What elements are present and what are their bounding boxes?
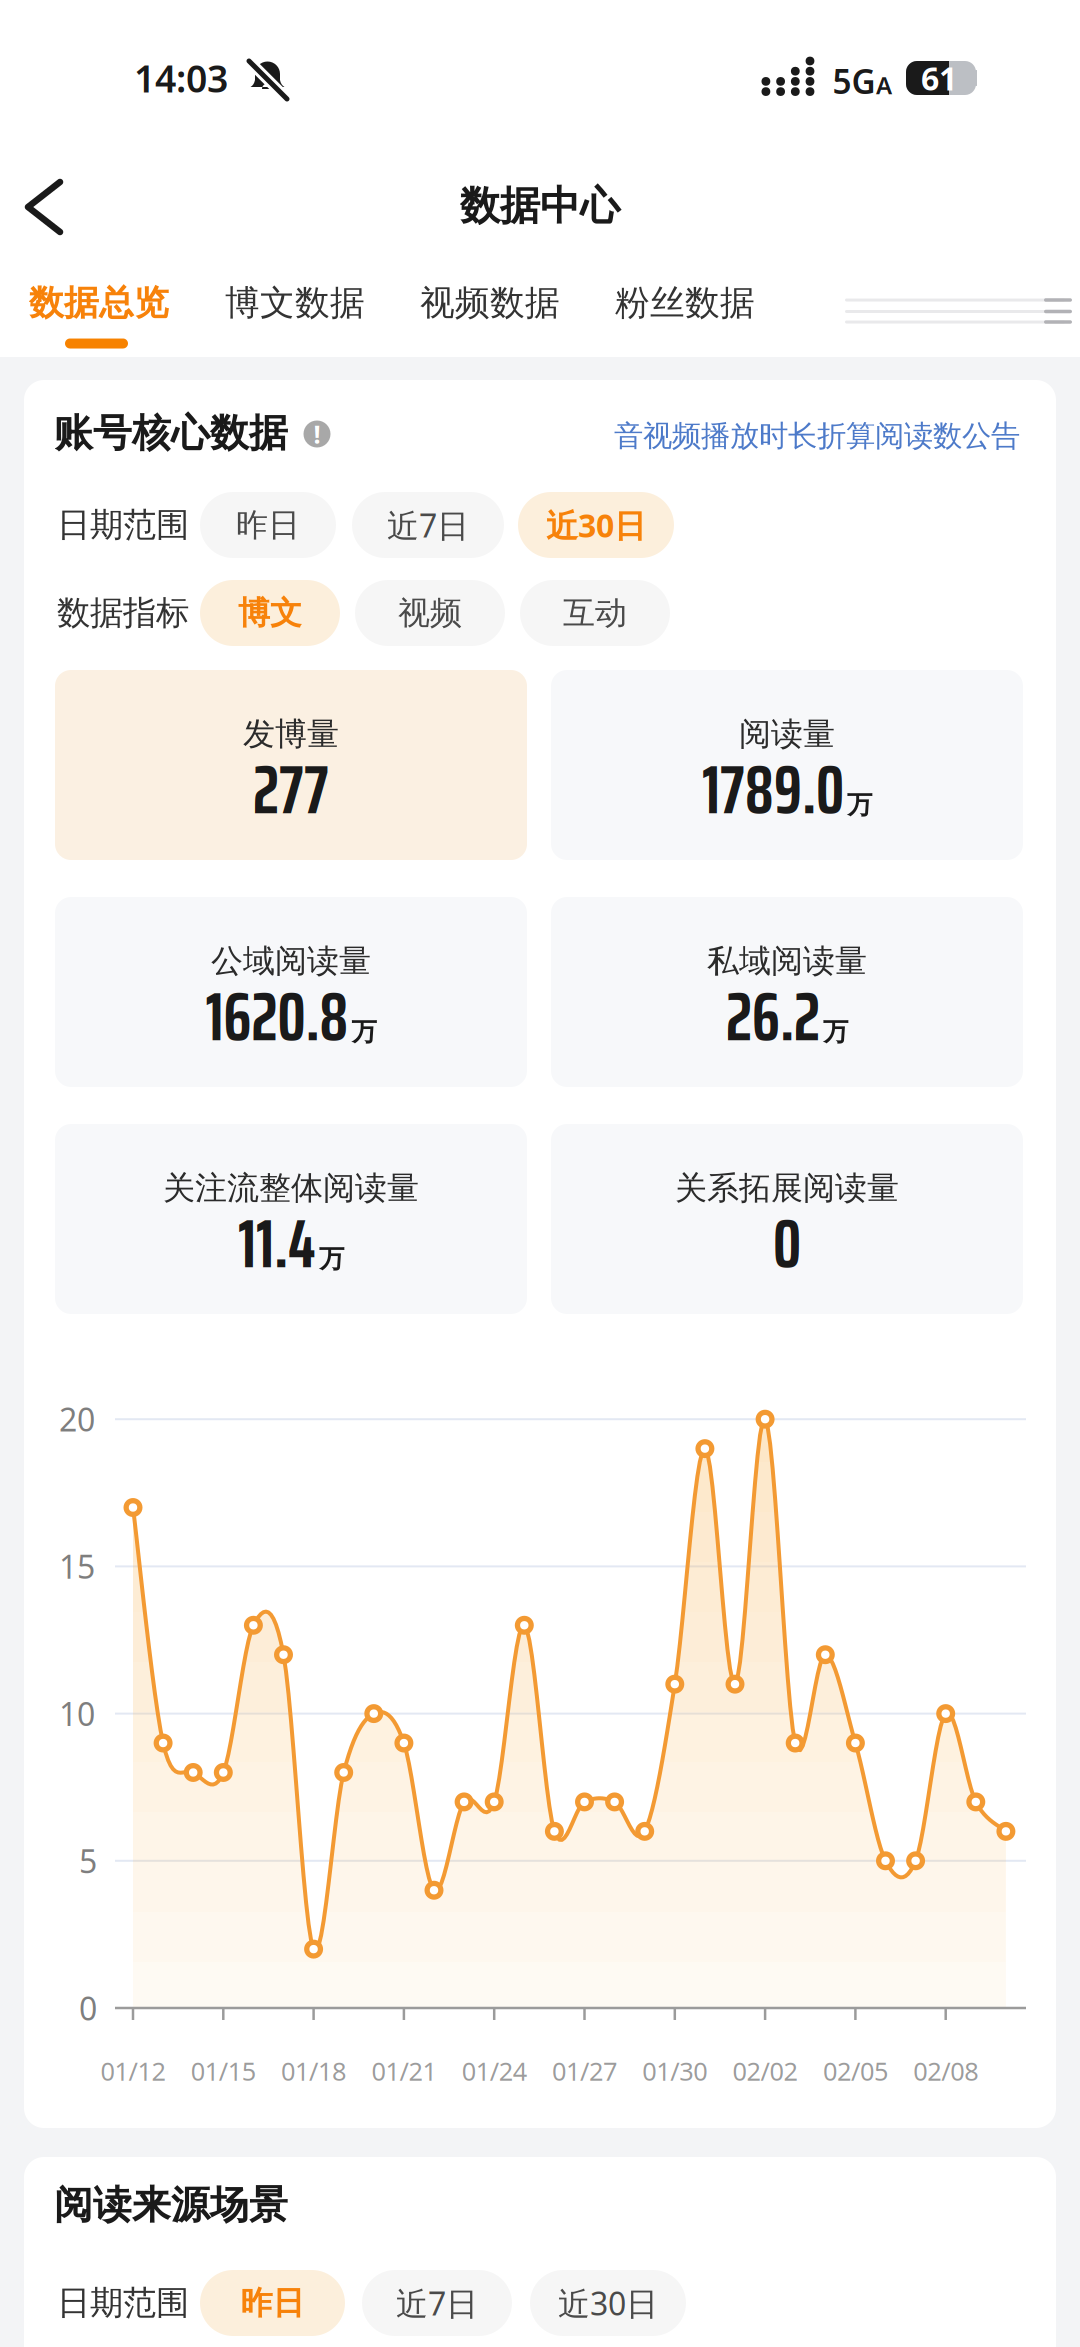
staticText: 02/05 — [823, 2054, 888, 2088]
button[interactable]: 昨日 — [200, 492, 336, 558]
button[interactable]: 近7日 — [352, 492, 504, 558]
button[interactable]: 博文 — [200, 580, 340, 646]
staticText: 粉丝数据 — [615, 282, 755, 324]
staticText: 数据总览 — [29, 282, 169, 324]
staticText: 视频 — [398, 593, 462, 633]
staticText: 26.2 — [726, 964, 820, 1069]
staticText: 1789.0 — [702, 737, 844, 842]
button[interactable]: 互动 — [520, 580, 670, 646]
staticText: 博文数据 — [225, 282, 365, 324]
staticText: 01/12 — [100, 2054, 165, 2088]
staticText: 61 — [921, 57, 957, 99]
staticText: 01/27 — [552, 2054, 617, 2088]
staticText: 0 — [79, 1987, 97, 2029]
staticText: 博文 — [238, 593, 302, 633]
staticText: 关系拓展阅读量 — [675, 1168, 899, 1208]
staticText: 14:03 — [134, 53, 228, 103]
staticText: 5 — [79, 1840, 97, 1882]
staticText: 昨日 — [236, 505, 300, 545]
staticText: 日期范围 — [57, 2282, 189, 2323]
staticText: 数据指标 — [57, 592, 189, 633]
staticText: 关注流整体阅读量 — [163, 1168, 419, 1208]
staticText: 近7日 — [396, 2282, 478, 2324]
staticText: 公域阅读量 — [211, 941, 371, 981]
button[interactable]: 粉丝数据 — [595, 271, 775, 335]
staticText: 01/30 — [642, 2054, 707, 2088]
staticText: 阅读来源场景 — [54, 2181, 288, 2229]
staticText: 万 — [823, 1016, 848, 1047]
staticText: 视频数据 — [420, 282, 560, 324]
staticText: 01/24 — [462, 2054, 527, 2088]
staticText: 万 — [351, 1016, 376, 1047]
staticText: 昨日 — [240, 2283, 304, 2323]
staticText: 01/15 — [191, 2054, 256, 2088]
staticText: 日期范围 — [57, 504, 189, 545]
button[interactable]: 音视频播放时长折算阅读数公告 — [614, 418, 1020, 454]
staticText: A — [876, 69, 892, 101]
staticText: 私域阅读量 — [707, 941, 867, 981]
staticText: 02/08 — [913, 2054, 978, 2088]
button[interactable]: Info — [301, 418, 333, 450]
staticText: 万 — [319, 1243, 344, 1274]
staticText: 20 — [59, 1398, 95, 1440]
staticText: 近7日 — [387, 504, 469, 546]
staticText: 发博量 — [243, 714, 339, 754]
staticText: 数据中心 — [460, 181, 620, 230]
staticText: 音视频播放时长折算阅读数公告 — [614, 418, 1020, 454]
staticText: 账号核心数据 — [54, 409, 288, 457]
staticText: 0 — [773, 1191, 801, 1296]
staticText: 15 — [59, 1545, 95, 1588]
staticText: 11.4 — [238, 1191, 316, 1296]
button[interactable]: 数据总览 — [9, 271, 189, 335]
staticText: ! — [313, 417, 320, 451]
staticText: 5G — [832, 59, 875, 103]
staticText: 10 — [59, 1692, 95, 1735]
staticText: 277 — [253, 737, 329, 842]
button[interactable]: Back — [12, 175, 76, 239]
button[interactable]: 近30日 — [518, 492, 674, 558]
staticText: 互动 — [563, 593, 627, 633]
staticText: 01/21 — [371, 2054, 436, 2088]
button[interactable]: 昨日 — [200, 2270, 345, 2336]
staticText: 万 — [847, 789, 872, 820]
staticText: 02/02 — [733, 2054, 798, 2088]
button[interactable]: 视频 — [355, 580, 505, 646]
staticText: 1620.8 — [205, 964, 348, 1069]
button[interactable]: 视频数据 — [400, 271, 580, 335]
staticText: 近30日 — [558, 2282, 658, 2324]
staticText: 阅读量 — [739, 714, 835, 754]
button[interactable]: 博文数据 — [205, 271, 385, 335]
button[interactable]: 近30日 — [530, 2270, 686, 2336]
staticText: 01/18 — [281, 2054, 346, 2088]
button[interactable]: 近7日 — [362, 2270, 512, 2336]
staticText: 近30日 — [546, 504, 646, 546]
